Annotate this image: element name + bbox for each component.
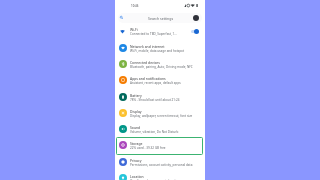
other: Search: [120, 16, 123, 19]
button[interactable]: Account: [193, 15, 199, 21]
staticText: Connected to TBD_Superfast, 1...: [130, 32, 177, 36]
staticText: 10:46: [131, 4, 139, 8]
staticText: Display: [130, 109, 142, 114]
staticText: Connected devices: [130, 60, 160, 65]
button[interactable]: Battery: [115, 89, 205, 105]
staticText: Permissions, account activity, personal …: [130, 163, 193, 167]
staticText: Wi-Fi, mobile, data usage and hotspot: [130, 49, 185, 53]
staticText: Wi-Fi: [130, 27, 138, 32]
staticText: Bluetooth, pairing, Auto, Driving mode, …: [130, 65, 193, 69]
staticText: Assistant, recent apps, default apps: [130, 81, 181, 85]
button[interactable]: Location: [115, 170, 205, 180]
staticText: 22% used - 39.32 GB free: [130, 146, 166, 150]
staticText: Storage: [130, 141, 143, 146]
staticText: Search settings: [148, 16, 174, 21]
staticText: Sound: [130, 125, 141, 130]
staticText: 78% - Should last until about 21:24: [130, 98, 180, 102]
staticText: Location: [130, 174, 144, 179]
staticText: Network and internet: [130, 44, 165, 49]
button[interactable]: Display: [115, 105, 205, 121]
staticText: Display, wallpaper, screen timeout, font…: [130, 114, 193, 118]
button[interactable]: Storage: [115, 137, 205, 153]
staticText: Apps and notifications: [130, 76, 166, 81]
button[interactable]: Apps and notifications: [115, 72, 205, 88]
button[interactable]: Wi-Fi: [115, 23, 205, 39]
button[interactable]: Sound: [115, 121, 205, 137]
staticText: Privacy: [130, 158, 142, 163]
staticText: On - 3 apps have access to location: [130, 179, 180, 180]
button[interactable]: Privacy: [115, 154, 205, 170]
button[interactable]: Connected devices: [115, 56, 205, 72]
button[interactable]: Search: [115, 12, 205, 24]
button[interactable]: Network and internet: [115, 40, 205, 56]
button[interactable]: Wi-Fi toggle: [191, 29, 199, 34]
staticText: Battery: [130, 93, 142, 98]
staticText: Volume, vibration, Do Not Disturb: [130, 130, 179, 134]
